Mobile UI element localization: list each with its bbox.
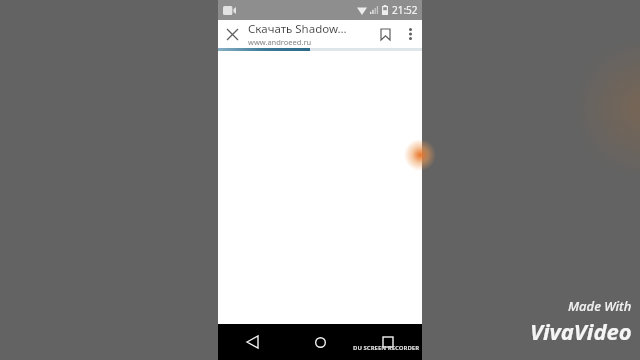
- button[interactable]: Home: [286, 324, 354, 360]
- staticText: www.androeed.ru: [248, 37, 312, 47]
- staticText: 21:52: [392, 3, 418, 17]
- button[interactable]: Скачать Shadow…: [248, 21, 368, 47]
- button[interactable]: More options: [398, 22, 422, 46]
- staticText: Made With: [568, 297, 632, 315]
- button[interactable]: Bookmark: [372, 21, 398, 47]
- staticText: Скачать Shadow…: [248, 21, 347, 37]
- button[interactable]: Back: [218, 324, 286, 360]
- button[interactable]: Close: [218, 20, 246, 48]
- staticText: VivaVideo: [530, 316, 632, 346]
- button[interactable]: Recent apps: [354, 324, 422, 360]
- staticText: DU SCREEN RECORDER: [353, 344, 420, 352]
